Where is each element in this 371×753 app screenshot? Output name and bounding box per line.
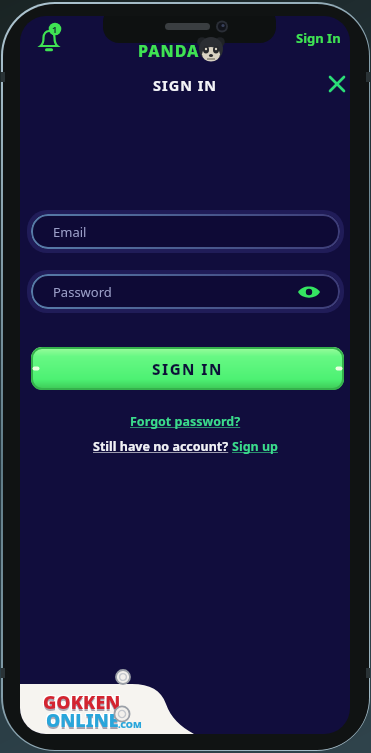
button[interactable]: 1 (36, 22, 66, 54)
staticText: GOKKEN (44, 689, 122, 710)
button[interactable]: Password (31, 274, 340, 309)
staticText: SIGN IN (152, 359, 223, 379)
staticText: Password (53, 283, 112, 301)
button[interactable] (323, 70, 350, 98)
staticText: .COM (118, 718, 142, 730)
staticText: Sign In (296, 29, 341, 47)
button[interactable]: Sign In (286, 28, 350, 48)
staticText: Still have no account? (93, 438, 232, 455)
staticText: GOKKEN (43, 692, 121, 713)
staticText: ONLINE (47, 709, 120, 730)
staticText: ONLINE (46, 710, 119, 731)
staticText: 1 (52, 23, 58, 35)
button[interactable]: Email (31, 214, 340, 249)
staticText: PANDA (138, 40, 200, 62)
button[interactable]: Forgot password? (130, 413, 241, 430)
button[interactable]: Sign up (232, 438, 278, 455)
button[interactable]: SIGN IN (31, 347, 344, 390)
staticText: ONLINE (46, 708, 119, 729)
staticText: ONLINE (45, 709, 118, 730)
staticText: GOKKEN (43, 690, 121, 711)
staticText: GOKKEN (42, 691, 120, 712)
staticText: GOKKEN (42, 689, 120, 710)
staticText: SIGN IN (153, 75, 218, 95)
staticText: ONLINE (47, 707, 120, 728)
staticText: Email (53, 223, 87, 241)
staticText: ONLINE (45, 707, 118, 728)
staticText: GOKKEN (44, 691, 122, 712)
